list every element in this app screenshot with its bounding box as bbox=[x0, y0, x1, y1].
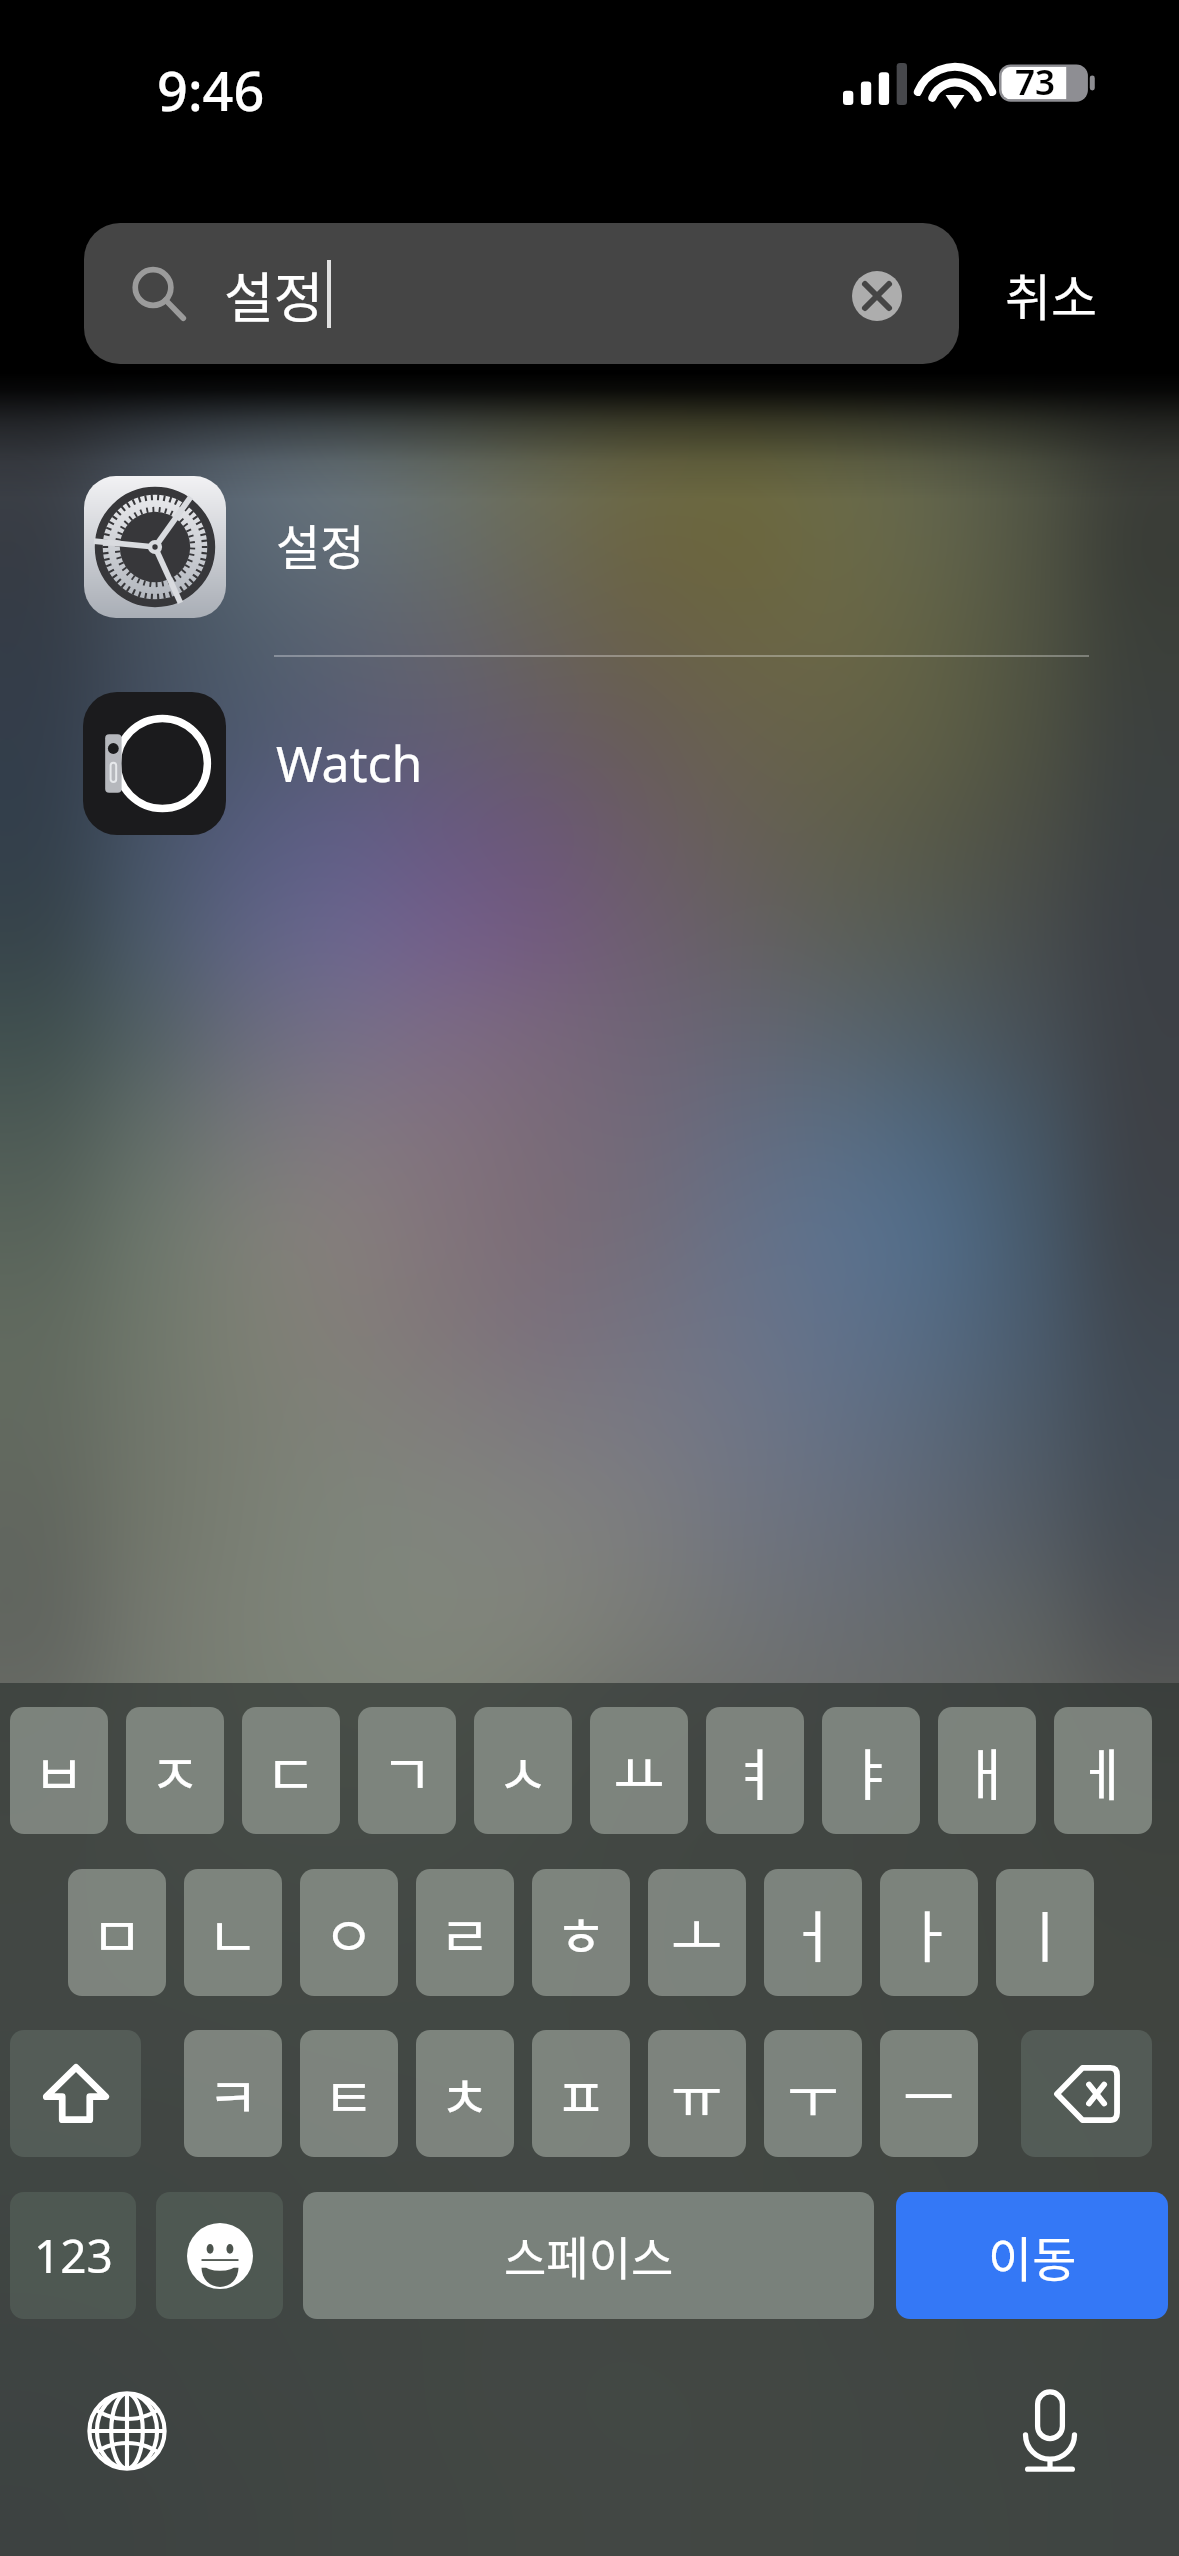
button[interactable]: Emoji keyboard bbox=[156, 2192, 283, 2319]
button[interactable]: ㅠ bbox=[648, 2030, 746, 2157]
button[interactable]: ㄴ bbox=[184, 1869, 282, 1996]
staticText: 설정 bbox=[224, 255, 324, 333]
button[interactable]: 설정 bbox=[84, 223, 959, 364]
staticText: ㅡ bbox=[903, 2053, 955, 2134]
staticText: ㅊ bbox=[439, 2053, 491, 2134]
button[interactable]: Settings app bbox=[84, 476, 226, 618]
staticText: ㅠ bbox=[671, 2053, 723, 2134]
button[interactable]: ㅡ bbox=[880, 2030, 978, 2157]
staticText: ㄷ bbox=[265, 1730, 317, 1811]
button[interactable]: ㅂ bbox=[10, 1707, 108, 1834]
button[interactable]: ㅏ bbox=[880, 1869, 978, 1996]
button[interactable]: ㅅ bbox=[474, 1707, 572, 1834]
staticText: ㅐ bbox=[961, 1730, 1013, 1811]
staticText: ㅎ bbox=[555, 1892, 607, 1973]
button[interactable]: Backspace bbox=[1021, 2030, 1152, 2157]
staticText: ㅔ bbox=[1077, 1730, 1129, 1811]
staticText: ㄱ bbox=[381, 1730, 433, 1811]
staticText: 설정 bbox=[276, 509, 365, 579]
button[interactable]: 취소 bbox=[1005, 258, 1097, 330]
button[interactable]: ㅛ bbox=[590, 1707, 688, 1834]
button[interactable]: 123 bbox=[10, 2192, 136, 2319]
staticText: 이동 bbox=[988, 2221, 1077, 2291]
button[interactable]: Watch app bbox=[83, 692, 226, 835]
staticText: ㅕ bbox=[729, 1730, 781, 1811]
button[interactable]: 이동 bbox=[896, 2192, 1168, 2319]
staticText: ㅇ bbox=[323, 1892, 375, 1973]
button[interactable]: Dictation bbox=[1004, 2385, 1096, 2477]
button[interactable]: ㄹ bbox=[416, 1869, 514, 1996]
staticText: ㅂ bbox=[33, 1730, 85, 1811]
staticText: ㅍ bbox=[555, 2053, 607, 2134]
staticText: ㅈ bbox=[149, 1730, 201, 1811]
button[interactable]: ㄱ bbox=[358, 1707, 456, 1834]
button[interactable]: ㅌ bbox=[300, 2030, 398, 2157]
staticText: ㅛ bbox=[613, 1730, 665, 1811]
staticText: 73 bbox=[1015, 58, 1056, 106]
button[interactable]: ㅓ bbox=[764, 1869, 862, 1996]
button[interactable]: ㅕ bbox=[706, 1707, 804, 1834]
button[interactable] bbox=[0, 657, 1179, 873]
button[interactable]: ㅔ bbox=[1054, 1707, 1152, 1834]
staticText: 9:46 bbox=[157, 53, 265, 127]
staticText: 취소 bbox=[1005, 258, 1097, 330]
button[interactable]: ㅍ bbox=[532, 2030, 630, 2157]
staticText: ㅗ bbox=[671, 1892, 723, 1973]
staticText: ㅏ bbox=[903, 1892, 955, 1973]
button[interactable]: ㅐ bbox=[938, 1707, 1036, 1834]
button[interactable]: ㅋ bbox=[184, 2030, 282, 2157]
button[interactable]: ㅁ bbox=[68, 1869, 166, 1996]
button[interactable]: ㅑ bbox=[822, 1707, 920, 1834]
staticText: ㅅ bbox=[497, 1730, 549, 1811]
button[interactable] bbox=[0, 440, 1179, 656]
staticText: ㅌ bbox=[323, 2053, 375, 2134]
staticText: ㄴ bbox=[207, 1892, 259, 1973]
staticText: Watch bbox=[276, 729, 423, 797]
staticText: ㄹ bbox=[439, 1892, 491, 1973]
button[interactable]: ㅈ bbox=[126, 1707, 224, 1834]
button[interactable]: ㄷ bbox=[242, 1707, 340, 1834]
staticText: ㅋ bbox=[207, 2053, 259, 2134]
button[interactable]: ㅊ bbox=[416, 2030, 514, 2157]
staticText: ㅣ bbox=[1019, 1892, 1071, 1973]
button[interactable]: ㅗ bbox=[648, 1869, 746, 1996]
button[interactable]: ㅣ bbox=[996, 1869, 1094, 1996]
button[interactable]: Clear text bbox=[852, 271, 902, 321]
button[interactable]: Shift bbox=[10, 2030, 141, 2157]
button[interactable]: ㅎ bbox=[532, 1869, 630, 1996]
staticText: 123 bbox=[34, 2224, 113, 2287]
staticText: ㅓ bbox=[787, 1892, 839, 1973]
staticText: ㅁ bbox=[91, 1892, 143, 1973]
staticText: ㅑ bbox=[845, 1730, 897, 1811]
button[interactable]: ㅜ bbox=[764, 2030, 862, 2157]
staticText: ㅜ bbox=[787, 2053, 839, 2134]
button[interactable]: Change keyboard language bbox=[81, 2385, 173, 2477]
button[interactable]: 스페이스 bbox=[303, 2192, 874, 2319]
staticText: 스페이스 bbox=[504, 2222, 674, 2289]
button[interactable]: ㅇ bbox=[300, 1869, 398, 1996]
